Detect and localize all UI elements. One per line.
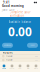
button[interactable]: Add money: [2, 43, 13, 48]
staticText: Add money: [3, 44, 11, 46]
staticText: Available balance: [8, 20, 31, 24]
staticText: 0.00: [35, 59, 38, 61]
staticText: Stats: [26, 68, 29, 69]
staticText: Home: [2, 68, 6, 69]
button[interactable]: Pay: [16, 62, 24, 72]
staticText: Transfer: [6, 55, 13, 57]
staticText: Transfer: [6, 59, 13, 61]
staticText: Pay: [18, 68, 21, 69]
button[interactable]: Complete your verification: [0, 11, 40, 17]
staticText: 0.00: [8, 24, 32, 40]
staticText: Jane Doe: [2, 8, 15, 12]
staticText: Send: [30, 44, 34, 46]
button[interactable]: Cards: [8, 62, 16, 72]
staticText: Complete your verification: [9, 10, 30, 18]
staticText: 0.00: [35, 55, 38, 57]
staticText: Good morning: [2, 4, 24, 8]
staticText: Cards: [9, 68, 14, 69]
staticText: Recent: [2, 51, 12, 54]
button[interactable]: Home: [0, 62, 8, 72]
button[interactable]: Transfer: [0, 58, 40, 62]
button[interactable]: More: [32, 62, 40, 72]
staticText: More: [34, 68, 38, 69]
staticText: 9:41: [3, 1, 10, 4]
button[interactable]: Send: [27, 43, 38, 48]
button[interactable]: Transfer: [0, 54, 40, 58]
button[interactable]: Stats: [24, 62, 32, 72]
